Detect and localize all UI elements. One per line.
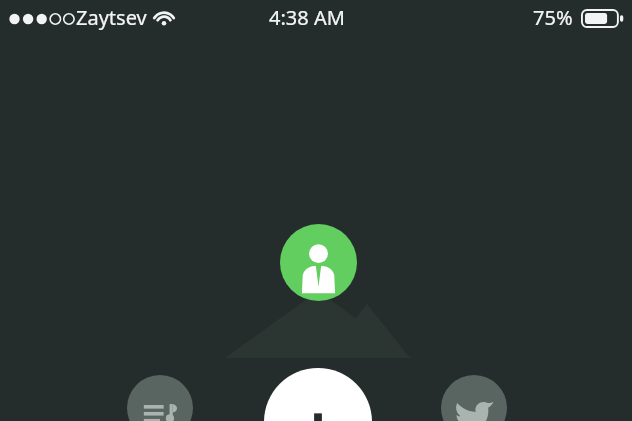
button[interactable]: Profile [280, 224, 357, 301]
button[interactable]: Playlist [127, 375, 193, 421]
staticText: 75% [533, 4, 573, 31]
staticText: Zaytsev [76, 4, 147, 31]
button[interactable]: Add [264, 368, 372, 421]
staticText: 4:38 AM [269, 4, 345, 31]
button[interactable]: Twitter [441, 375, 507, 421]
